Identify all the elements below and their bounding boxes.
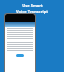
- button[interactable]: [16, 54, 24, 57]
- staticText: Voice Transcript: [16, 9, 48, 14]
- staticText: Use Smart: [22, 3, 43, 8]
